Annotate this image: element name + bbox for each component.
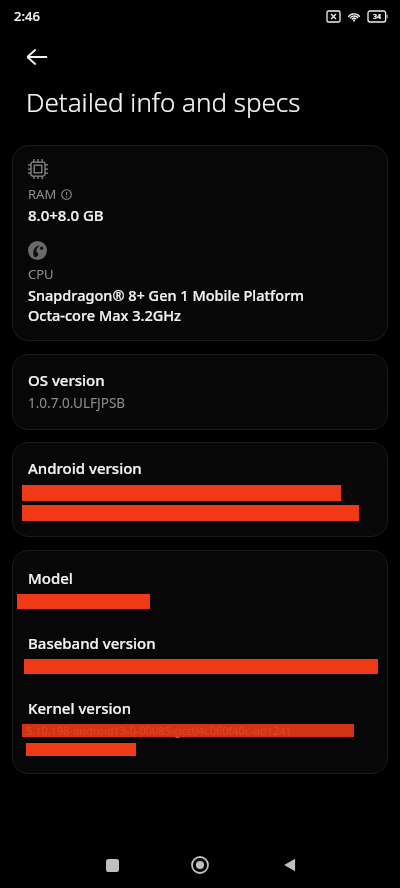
button[interactable]: Model <box>12 568 388 609</box>
staticText: 2:46 <box>14 7 40 25</box>
staticText: OS version <box>28 370 105 390</box>
staticText: 1.0.7.0.ULFJPSB <box>28 394 126 412</box>
button[interactable]: Baseband version <box>12 633 388 674</box>
staticText: Kernel version <box>28 698 132 718</box>
button[interactable]: Android version <box>12 442 388 537</box>
staticText: 5.10.198-android13-0-00085-gcc04c060f40c… <box>26 723 292 738</box>
staticText: Snapdragon® 8+ Gen 1 Mobile Platform <box>28 285 304 305</box>
button[interactable]: Home <box>180 845 220 885</box>
button[interactable]: Recent apps <box>92 845 132 885</box>
staticText: 8.0+8.0 GB <box>28 205 104 225</box>
staticText: Model <box>28 568 73 588</box>
button[interactable]: Back <box>18 38 56 76</box>
staticText: Android version <box>28 458 142 478</box>
staticText: Octa-core Max 3.2GHz <box>28 305 181 325</box>
staticText: Detailed info and specs <box>26 84 301 119</box>
staticText: 34 <box>373 12 382 22</box>
button[interactable]: Kernel version <box>12 698 388 756</box>
staticText: Baseband version <box>28 633 156 653</box>
button[interactable]: Back <box>270 845 310 885</box>
button[interactable]: OS version <box>12 354 388 430</box>
staticText: CPU <box>28 265 54 283</box>
staticText: RAM <box>28 185 57 203</box>
button[interactable]: RAM <box>12 145 388 341</box>
